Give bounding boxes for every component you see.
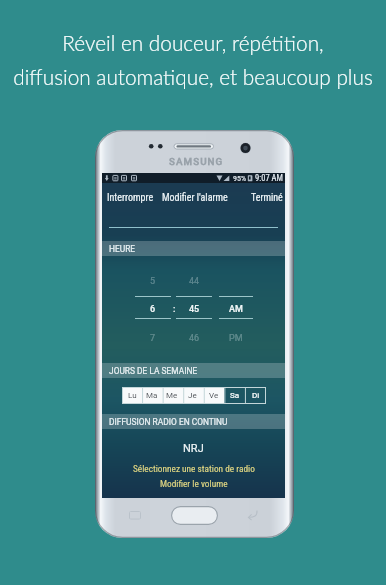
button[interactable]: Terminé: [248, 188, 286, 208]
staticText: Ma: [146, 391, 158, 400]
button[interactable]: Me: [162, 387, 182, 404]
staticText: HEURE: [109, 244, 136, 254]
button[interactable]: Ve: [203, 387, 224, 404]
button[interactable]: Ma: [142, 387, 162, 404]
staticText: AM: [229, 304, 243, 315]
button[interactable]: Modifier l'alarme: [159, 188, 231, 208]
staticText: Modifier l'alarme: [162, 192, 228, 204]
staticText: 95%: [233, 174, 246, 183]
button[interactable]: 6: [138, 304, 168, 315]
staticText: :: [173, 304, 176, 315]
staticText: Ve: [209, 391, 219, 400]
button[interactable]: Je: [182, 387, 203, 404]
button[interactable]: AM: [221, 304, 251, 315]
button[interactable]: Lu: [122, 387, 142, 404]
button[interactable]: Recent apps: [129, 511, 141, 520]
staticText: Di: [252, 391, 260, 400]
staticText: 7: [150, 333, 156, 344]
staticText: DIFFUSION RADIO EN CONTINU: [109, 417, 228, 427]
staticText: 6: [150, 304, 156, 315]
button[interactable]: 45: [179, 304, 209, 315]
staticText: 44: [189, 276, 200, 287]
staticText: Sélectionnez une station de radio: [133, 463, 255, 474]
staticText: Sa: [230, 391, 240, 400]
staticText: Me: [166, 391, 178, 400]
staticText: 46: [189, 333, 200, 344]
staticText: Je: [188, 391, 197, 400]
staticText: JOURS DE LA SEMAINE: [109, 366, 198, 376]
staticText: 5: [150, 276, 156, 287]
button[interactable]: NRJ: [175, 440, 212, 457]
staticText: Interrompre: [107, 192, 154, 204]
button[interactable]: Di: [245, 387, 266, 404]
staticText: Modifier le volume: [160, 478, 228, 489]
staticText: Terminé: [251, 192, 283, 204]
staticText: Lu: [128, 391, 137, 400]
staticText: 9:07 AM: [255, 173, 283, 183]
staticText: 45: [189, 304, 200, 315]
button[interactable]: Home: [171, 506, 218, 525]
button[interactable]: Interrompre: [104, 188, 157, 208]
button[interactable]: Sa: [224, 387, 245, 404]
button[interactable]: Back: [246, 508, 259, 521]
staticText: SAMSUNG: [169, 156, 224, 167]
staticText: PM: [229, 333, 243, 344]
button[interactable]: :: [159, 304, 189, 315]
button[interactable]: Sélectionnez une station de radio: [125, 461, 263, 476]
staticText: Réveil en douceur, répétition, diffusion…: [13, 30, 373, 89]
staticText: NRJ: [183, 442, 204, 455]
button[interactable]: Modifier le volume: [152, 476, 236, 491]
